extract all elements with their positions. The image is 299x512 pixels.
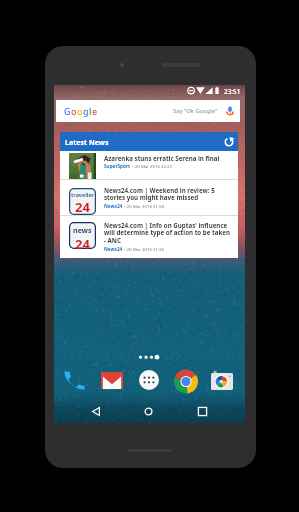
staticText: 23:51 [224, 87, 241, 96]
staticText: News24 [104, 203, 123, 209]
staticText: • 20 Mar 2016 21:36 [123, 246, 165, 252]
staticText: 24 [75, 198, 90, 215]
staticText: • 20 Mar 2016 21:58 [123, 203, 165, 209]
staticText: G [64, 105, 71, 117]
button[interactable]: All apps [139, 370, 159, 390]
button[interactable]: Chrome [174, 369, 198, 394]
button[interactable]: Back [81, 399, 111, 424]
button[interactable]: Azarenka stuns erratic Serena in final [60, 151, 238, 180]
staticText: o [71, 105, 77, 117]
staticText: News24.com | Info on Guptas' influence w… [104, 221, 232, 245]
button[interactable]: Latest News [65, 132, 234, 151]
staticText: l [89, 105, 92, 117]
staticText: o [77, 105, 83, 117]
button[interactable]: Recents [187, 399, 217, 424]
button[interactable]: Gmail [101, 372, 123, 389]
other: Voice search [227, 106, 233, 116]
staticText: SuperSport [104, 163, 131, 169]
staticText: Azarenka stuns erratic Serena in final [104, 154, 220, 162]
staticText: e [92, 105, 98, 117]
button[interactable]: Home [133, 399, 163, 424]
staticText: News24.com | Weekend in review: 5 storie… [104, 186, 232, 202]
staticText: g [83, 105, 89, 117]
button[interactable]: Phone [64, 370, 85, 390]
staticText: • 20 Mar 2016 22:23 [131, 163, 173, 169]
button[interactable]: news [60, 216, 238, 258]
staticText: traveller [71, 191, 95, 198]
button[interactable]: traveller [60, 180, 238, 216]
staticText: News24 [104, 246, 123, 252]
button[interactable]: G [56, 100, 240, 122]
staticText: news [73, 225, 92, 235]
staticText: Latest News [65, 137, 109, 147]
other: Refresh [224, 137, 234, 147]
staticText: 24 [75, 235, 90, 249]
button[interactable]: Camera [211, 371, 233, 390]
staticText: Say "Ok Google" [173, 107, 218, 115]
